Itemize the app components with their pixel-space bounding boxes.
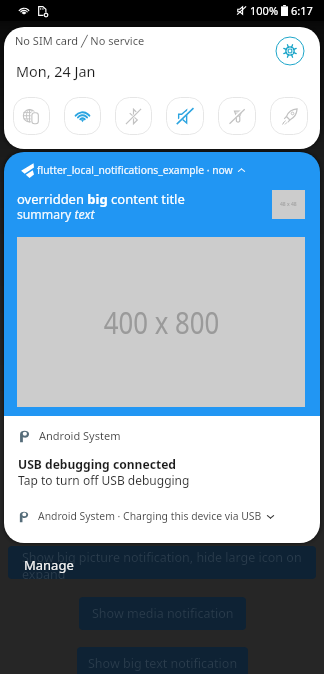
button[interactable]: Show big picture notification, hide larg… bbox=[8, 546, 316, 579]
button[interactable]: Flashlight bbox=[218, 97, 256, 135]
staticText: Show media notification bbox=[92, 605, 234, 622]
staticText: flutter_local_notifications_example · no… bbox=[37, 163, 233, 177]
button[interactable]: Android System bbox=[4, 416, 320, 543]
button[interactable]: Bluetooth bbox=[115, 97, 152, 135]
staticText: Tap to turn off USB debugging bbox=[18, 472, 190, 488]
staticText: expand bbox=[22, 566, 66, 579]
staticText: 6:17 bbox=[291, 3, 313, 18]
staticText: No SIM card ╱ No service bbox=[15, 33, 145, 48]
button[interactable]: Wi-Fi bbox=[64, 97, 101, 135]
button[interactable]: Manage bbox=[8, 556, 308, 574]
staticText: 48 x 48 bbox=[280, 201, 297, 208]
button[interactable]: Show big text notification bbox=[77, 647, 248, 674]
staticText: Show big text notification bbox=[88, 655, 238, 672]
button[interactable]: Settings bbox=[275, 36, 305, 66]
button[interactable]: Show media notification bbox=[79, 597, 246, 630]
button[interactable]: Boost bbox=[270, 97, 308, 135]
staticText: 100% bbox=[250, 3, 279, 18]
staticText: USB debugging connected bbox=[18, 456, 177, 472]
staticText: Show big picture notification, hide larg… bbox=[22, 549, 302, 566]
staticText: Android System · Charging this device vi… bbox=[38, 509, 262, 523]
staticText: Manage bbox=[24, 556, 74, 574]
staticText: Android System bbox=[39, 428, 121, 443]
staticText: overridden big content title bbox=[17, 190, 185, 208]
button[interactable]: Mute bbox=[166, 97, 204, 135]
staticText: Mon, 24 Jan bbox=[16, 62, 96, 82]
button[interactable]: flutter_local_notifications_example · no… bbox=[4, 152, 320, 416]
staticText: 400 x 800 bbox=[104, 301, 219, 343]
button[interactable]: Mobile data bbox=[13, 97, 50, 135]
staticText: summary text bbox=[17, 206, 95, 223]
